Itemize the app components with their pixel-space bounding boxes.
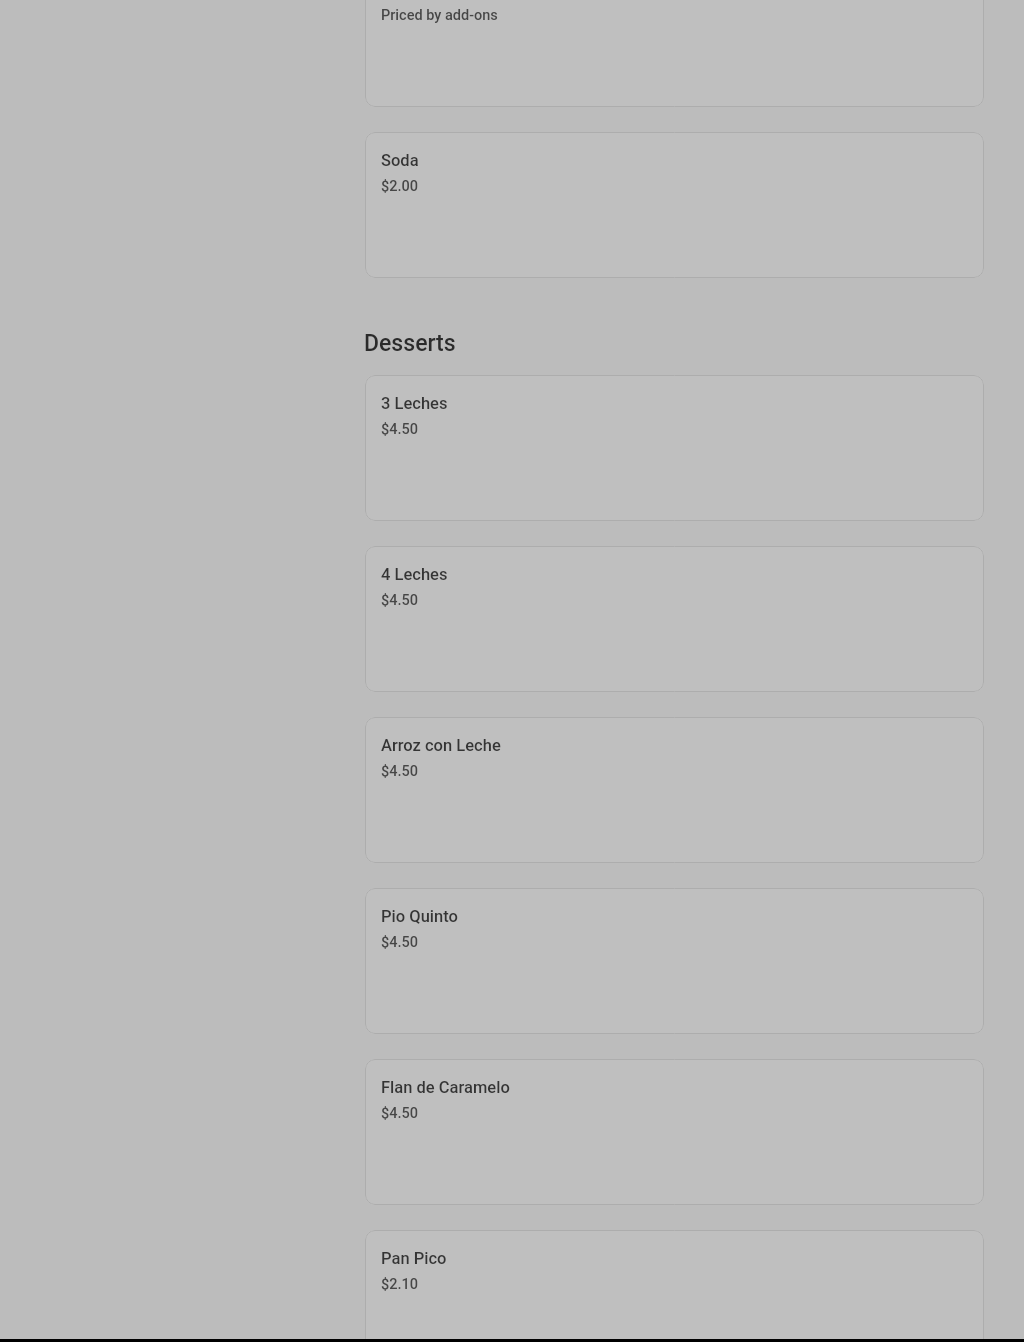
staticText: $4.50 xyxy=(381,934,419,951)
button[interactable]: Soda xyxy=(365,132,984,278)
staticText: Desserts xyxy=(364,330,456,357)
button[interactable]: Flan de Caramelo xyxy=(365,1059,984,1205)
button[interactable]: 3 Leches xyxy=(365,375,984,521)
staticText: $2.00 xyxy=(381,178,419,195)
staticText: Pan Pico xyxy=(381,1249,447,1268)
button[interactable]: Arroz con Leche xyxy=(365,717,984,863)
button[interactable]: 4 Leches xyxy=(365,546,984,692)
staticText: 4 Leches xyxy=(381,565,448,584)
staticText: Flan de Caramelo xyxy=(381,1078,510,1097)
button[interactable]: Pan Pico xyxy=(365,1230,984,1342)
staticText: Pio Quinto xyxy=(381,907,458,926)
staticText: 3 Leches xyxy=(381,394,448,413)
staticText: $4.50 xyxy=(381,763,419,780)
staticText: Soda xyxy=(381,151,419,170)
staticText: $4.50 xyxy=(381,1105,419,1122)
staticText: $2.10 xyxy=(381,1276,419,1293)
staticText: $4.50 xyxy=(381,421,419,438)
staticText: Arroz con Leche xyxy=(381,736,501,755)
button[interactable]: Pio Quinto xyxy=(365,888,984,1034)
button[interactable]: Chips & Salsa xyxy=(365,0,984,107)
staticText: Priced by add-ons xyxy=(381,7,498,24)
staticText: $4.50 xyxy=(381,592,419,609)
